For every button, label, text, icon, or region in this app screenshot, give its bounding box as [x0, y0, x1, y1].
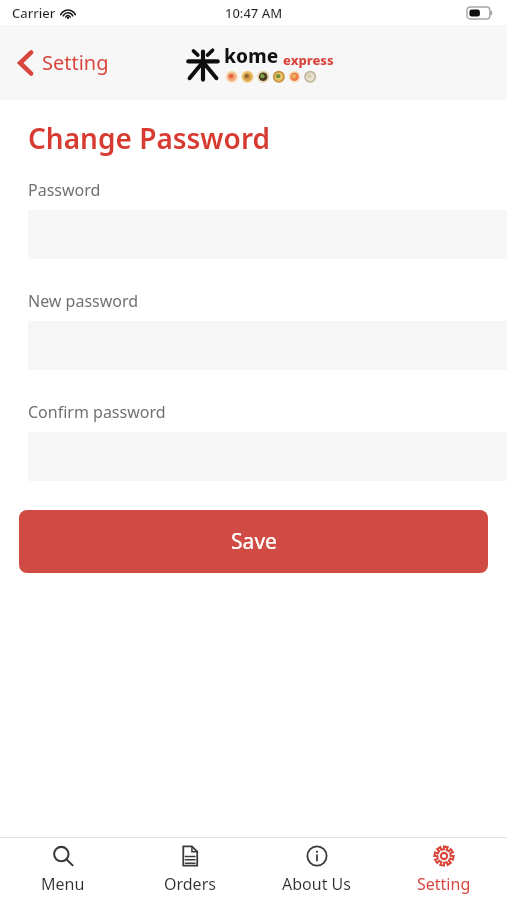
- button[interactable]: Setting: [380, 838, 507, 900]
- button[interactable]: About Us: [253, 838, 380, 900]
- staticText: New password: [28, 290, 139, 312]
- staticText: Orders: [164, 873, 216, 895]
- staticText: Carrier: [12, 4, 56, 22]
- button[interactable]: Orders: [126, 838, 253, 900]
- staticText: Confirm password: [28, 401, 166, 423]
- staticText: 10:47 AM: [225, 4, 283, 22]
- staticText: Save: [231, 527, 277, 556]
- staticText: About Us: [282, 873, 351, 895]
- staticText: Change Password: [28, 119, 271, 157]
- staticText: express: [283, 51, 334, 69]
- staticText: Setting: [42, 49, 109, 76]
- button[interactable]: Setting: [12, 43, 115, 82]
- staticText: Setting: [417, 873, 471, 895]
- staticText: Password: [28, 179, 101, 201]
- staticText: Menu: [41, 873, 85, 895]
- button[interactable]: Menu: [0, 838, 126, 900]
- staticText: kome: [224, 43, 279, 69]
- button[interactable]: Save: [19, 510, 488, 573]
